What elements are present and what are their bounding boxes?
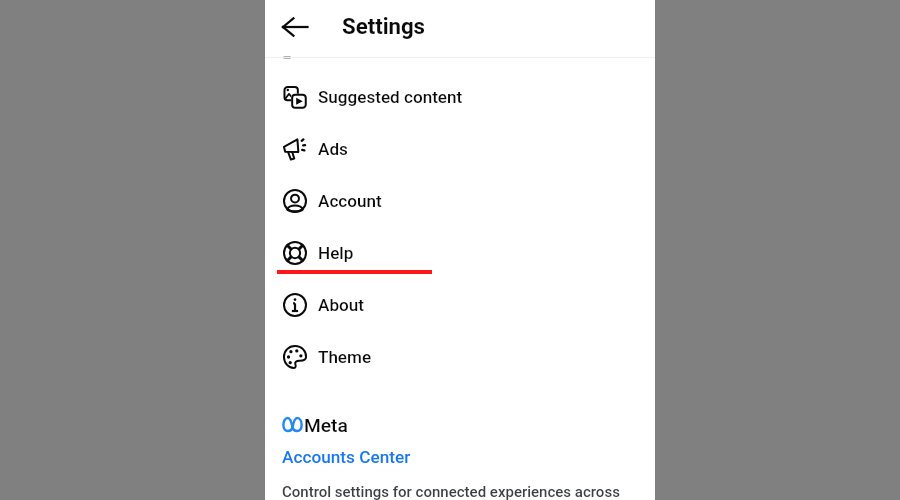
- button[interactable]: Help: [265, 227, 655, 279]
- staticText: Meta: [304, 414, 348, 437]
- staticText: Theme: [318, 347, 372, 367]
- staticText: Settings: [342, 13, 426, 39]
- staticText: Accounts Center: [282, 447, 411, 467]
- button[interactable]: Back: [273, 5, 317, 49]
- button[interactable]: About: [265, 279, 655, 331]
- button[interactable]: Ads: [265, 123, 655, 175]
- staticText: Help: [318, 243, 354, 263]
- staticText: Suggested content: [318, 87, 463, 107]
- button[interactable]: Theme: [265, 331, 655, 383]
- staticText: Control settings for connected experienc…: [282, 483, 662, 500]
- staticText: About: [318, 295, 364, 315]
- staticText: Ads: [318, 139, 348, 159]
- staticText: Account: [318, 191, 382, 211]
- button[interactable]: Suggested content: [265, 71, 655, 123]
- button[interactable]: Accounts Center: [274, 445, 419, 469]
- button[interactable]: Account: [265, 175, 655, 227]
